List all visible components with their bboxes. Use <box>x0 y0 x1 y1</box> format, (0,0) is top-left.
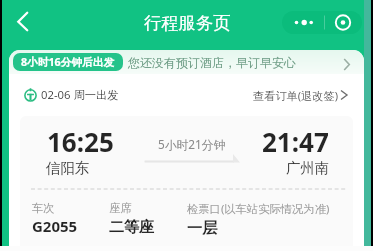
staticText: 检票口(以车站实际情况为准) <box>187 201 330 216</box>
button[interactable]: 查看订单(退改签) <box>253 85 350 105</box>
staticText: 一层 <box>187 219 217 238</box>
staticText: 8小时16分钟后出发 <box>21 55 115 70</box>
staticText: G2055 <box>32 216 78 236</box>
staticText: 16:25 <box>47 124 114 159</box>
staticText: 5小时21分钟 <box>158 136 226 152</box>
staticText: 二等座 <box>109 218 154 237</box>
button[interactable]: Back <box>5 5 43 43</box>
button[interactable]: 8小时16分钟后出发 <box>9 50 364 74</box>
button[interactable]: More options <box>282 11 325 34</box>
button[interactable]: Close mini program <box>325 11 362 34</box>
staticText: 广州南 <box>286 159 330 177</box>
staticText: 查看订单(退改签) <box>253 88 339 103</box>
staticText: 02-06 周一出发 <box>41 87 119 102</box>
staticText: 座席 <box>109 201 132 215</box>
staticText: 车次 <box>32 201 55 215</box>
staticText: 21:47 <box>262 124 329 159</box>
staticText: 信阳东 <box>46 159 90 177</box>
staticText: 您还没有预订酒店，早订早安心 <box>128 55 296 70</box>
staticText: 行程服务页 <box>144 12 231 34</box>
